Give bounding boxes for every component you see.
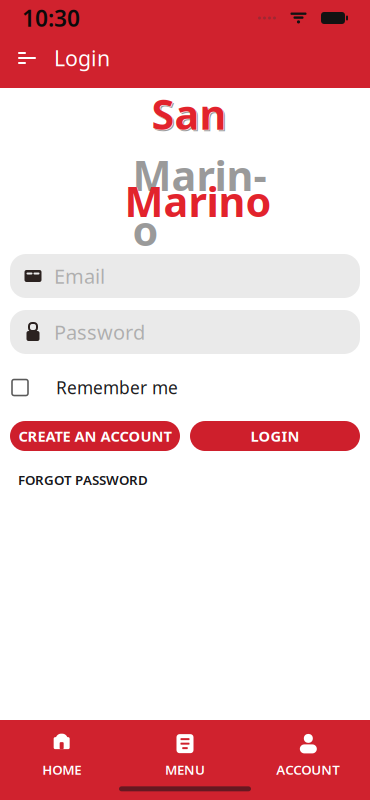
staticText: CREATE AN ACCOUNT [18, 426, 171, 446]
staticText: Marino [125, 174, 272, 229]
staticText: Marino [124, 173, 271, 228]
staticText: San [151, 86, 226, 141]
staticText: 10:30 [22, 3, 80, 33]
button[interactable]: ACCOUNT [247, 734, 370, 778]
staticText: ACCOUNT [276, 761, 340, 778]
button[interactable]: MENU [123, 734, 247, 778]
staticText: FORGOT PASSWORD [18, 471, 148, 489]
staticText: San [153, 88, 228, 143]
button[interactable]: Back [10, 41, 44, 75]
staticText: LOGIN [250, 426, 299, 446]
button[interactable]: HOME [0, 734, 123, 778]
button[interactable]: Remember me [12, 370, 178, 405]
staticText: Marino [132, 148, 266, 257]
staticText: Login [54, 44, 110, 72]
staticText: Password [54, 319, 145, 345]
staticText: MENU [165, 761, 205, 778]
button[interactable]: FORGOT PASSWORD [18, 467, 148, 493]
button[interactable]: LOGIN [190, 421, 360, 451]
staticText: HOME [42, 761, 81, 778]
button[interactable]: CREATE AN ACCOUNT [10, 421, 180, 451]
staticText: Remember me [56, 376, 178, 399]
staticText: San [152, 87, 227, 142]
staticText: Email [54, 263, 105, 289]
